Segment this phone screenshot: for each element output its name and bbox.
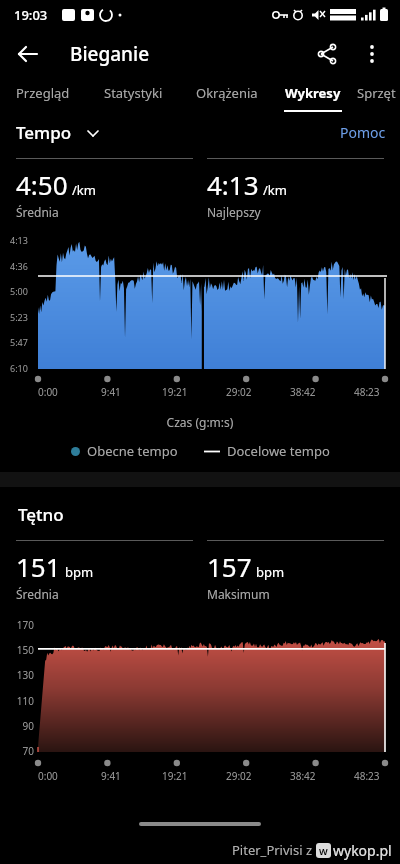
staticText: Maksimum bbox=[207, 586, 270, 602]
staticText: 5:00 bbox=[10, 285, 28, 297]
staticText: 6:10 bbox=[10, 362, 28, 374]
staticText: /km bbox=[72, 181, 96, 199]
staticText: 157 bbox=[207, 549, 252, 584]
staticText: 5:23 bbox=[10, 311, 28, 323]
button[interactable]: Tempo bbox=[16, 121, 100, 144]
staticText: wykop.pl bbox=[333, 841, 392, 860]
staticText: 29:02 bbox=[226, 385, 252, 399]
staticText: 4:13 bbox=[10, 234, 28, 246]
staticText: 29:02 bbox=[226, 769, 252, 783]
staticText: 38:42 bbox=[290, 769, 316, 783]
staticText: 19:03 bbox=[14, 6, 48, 24]
staticText: bpm bbox=[256, 563, 285, 581]
staticText: 4:13 bbox=[207, 167, 259, 202]
button[interactable]: Share bbox=[308, 34, 348, 74]
staticText: 48:23 bbox=[354, 769, 380, 783]
staticText: 90 bbox=[6, 719, 34, 733]
staticText: Średnia bbox=[16, 586, 59, 602]
staticText: Statystyki bbox=[104, 84, 163, 102]
staticText: 0:00 bbox=[38, 385, 58, 399]
staticText: Średnia bbox=[16, 204, 59, 220]
button[interactable]: Pomoc bbox=[340, 123, 386, 142]
button[interactable]: Okrążenia bbox=[180, 78, 274, 114]
staticText: Docelowe tempo bbox=[227, 442, 330, 460]
staticText: Tętno bbox=[18, 503, 64, 526]
staticText: Tempo bbox=[16, 121, 72, 144]
staticText: 170 bbox=[6, 618, 34, 632]
staticText: 4:36 bbox=[10, 260, 28, 272]
staticText: Czas (g:m:s) bbox=[0, 414, 400, 430]
staticText: 4:50 bbox=[16, 167, 68, 202]
staticText: 48:23 bbox=[354, 385, 380, 399]
staticText: Sprzęt bbox=[357, 84, 396, 102]
button[interactable]: More options bbox=[352, 34, 392, 74]
staticText: 19:21 bbox=[162, 769, 188, 783]
staticText: Obecne tempo bbox=[87, 442, 178, 460]
staticText: 5:47 bbox=[10, 336, 28, 348]
staticText: 19:21 bbox=[162, 385, 188, 399]
staticText: Bieganie bbox=[70, 41, 150, 67]
staticText: 38:42 bbox=[290, 385, 316, 399]
staticText: 0:00 bbox=[38, 769, 58, 783]
staticText: 150 bbox=[6, 643, 34, 657]
button[interactable]: Wykresy bbox=[274, 78, 352, 114]
staticText: 70 bbox=[6, 744, 34, 758]
staticText: Pomoc bbox=[340, 123, 386, 142]
button[interactable]: Back bbox=[8, 34, 48, 74]
staticText: bpm bbox=[65, 563, 94, 581]
staticText: Okrążenia bbox=[196, 84, 258, 102]
staticText: Piter_Privisi z bbox=[232, 841, 316, 859]
button[interactable]: Przegląd bbox=[0, 78, 86, 114]
staticText: /km bbox=[263, 181, 287, 199]
button[interactable]: Statystyki bbox=[86, 78, 180, 114]
staticText: Wykresy bbox=[285, 84, 341, 102]
staticText: 151 bbox=[16, 549, 61, 584]
staticText: W bbox=[319, 845, 328, 857]
staticText: 130 bbox=[6, 668, 34, 682]
staticText: 9:41 bbox=[101, 385, 121, 399]
staticText: Przegląd bbox=[16, 84, 70, 102]
button[interactable]: Sprzęt bbox=[352, 78, 400, 114]
staticText: 9:41 bbox=[101, 769, 121, 783]
staticText: 110 bbox=[6, 694, 34, 708]
staticText: Najlepszy bbox=[207, 204, 261, 220]
